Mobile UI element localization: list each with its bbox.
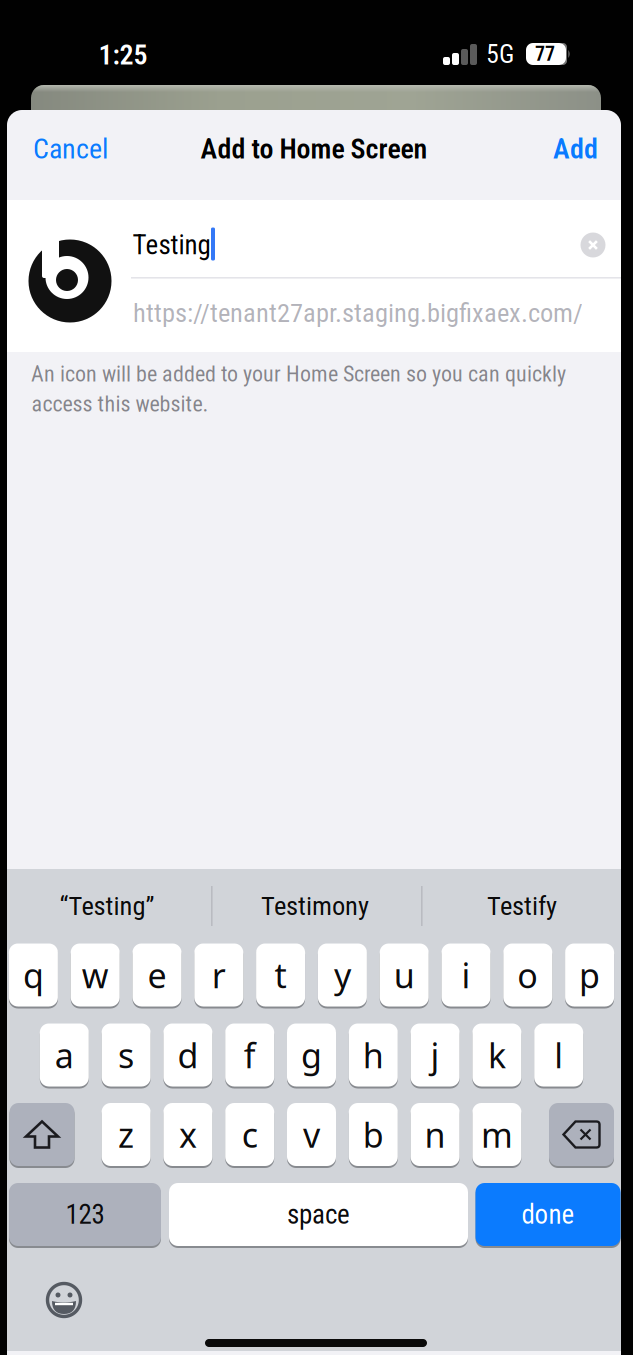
button[interactable]: u <box>380 942 429 1007</box>
button[interactable]: v <box>287 1102 336 1167</box>
staticText: x <box>179 1111 197 1158</box>
button[interactable]: 123 <box>9 1182 161 1247</box>
button[interactable]: b <box>349 1102 398 1167</box>
staticText: y <box>334 952 351 998</box>
button[interactable]: a <box>40 1022 89 1087</box>
staticText: 123 <box>65 1199 104 1230</box>
button[interactable]: s <box>102 1022 151 1087</box>
staticText: Cancel <box>33 133 108 165</box>
button[interactable]: t <box>256 942 305 1007</box>
staticText: n <box>425 1111 446 1158</box>
staticText: 77 <box>535 42 555 66</box>
staticText: i <box>461 952 470 998</box>
button[interactable]: “Testing” <box>12 878 202 934</box>
button[interactable]: r <box>194 942 243 1007</box>
button[interactable]: i <box>441 942 490 1007</box>
staticText: An icon will be added to your Home Scree… <box>31 361 566 387</box>
button[interactable]: d <box>163 1022 212 1087</box>
button[interactable]: j <box>411 1022 460 1087</box>
staticText: o <box>517 952 538 998</box>
staticText: v <box>303 1111 320 1158</box>
button[interactable]: k <box>472 1022 521 1087</box>
staticText: p <box>579 952 600 998</box>
button[interactable]: Add <box>553 133 598 165</box>
button[interactable]: space <box>169 1182 468 1247</box>
button[interactable]: done <box>475 1182 620 1247</box>
staticText: u <box>394 952 415 998</box>
staticText: s <box>118 1032 134 1078</box>
staticText: 1:25 <box>98 39 147 71</box>
staticText: q <box>23 952 44 998</box>
staticText: f <box>244 1032 256 1078</box>
staticText: d <box>177 1032 198 1078</box>
button[interactable]: y <box>318 942 367 1007</box>
staticText: c <box>242 1111 258 1158</box>
button[interactable]: h <box>349 1022 398 1087</box>
staticText: z <box>118 1111 134 1158</box>
staticText: “Testing” <box>59 890 154 922</box>
staticText: k <box>488 1032 506 1078</box>
staticText: e <box>147 952 166 998</box>
button[interactable]: z <box>102 1102 151 1167</box>
staticText: h <box>363 1032 384 1078</box>
staticText: a <box>55 1032 74 1078</box>
button[interactable]: n <box>411 1102 460 1167</box>
staticText: access this website. <box>31 391 208 417</box>
button[interactable]: l <box>534 1022 583 1087</box>
staticText: Testify <box>487 890 557 922</box>
button[interactable]: o <box>503 942 552 1007</box>
button[interactable]: Delete <box>549 1102 614 1167</box>
staticText: g <box>301 1032 322 1078</box>
button[interactable]: p <box>565 942 614 1007</box>
staticText: j <box>431 1032 440 1078</box>
button[interactable]: Emoji <box>46 1282 82 1318</box>
staticText: https://tenant27apr.staging.bigfixaex.co… <box>133 297 583 329</box>
button[interactable]: g <box>287 1022 336 1087</box>
button[interactable]: w <box>71 942 120 1007</box>
staticText: Add <box>553 133 598 165</box>
button[interactable]: c <box>225 1102 274 1167</box>
button[interactable]: q <box>9 942 58 1007</box>
staticText: space <box>287 1199 350 1230</box>
button[interactable]: Clear text <box>580 232 605 257</box>
staticText: w <box>82 952 109 998</box>
staticText: 5G <box>486 39 514 69</box>
staticText: t <box>275 952 287 998</box>
button[interactable]: x <box>163 1102 212 1167</box>
button[interactable]: Testify <box>427 878 617 934</box>
staticText: b <box>363 1111 384 1158</box>
button[interactable]: Shift <box>9 1102 74 1167</box>
button[interactable]: Testimony <box>220 878 410 934</box>
staticText: Testimony <box>261 890 369 922</box>
button[interactable]: Cancel <box>33 133 108 165</box>
staticText: Add to Home Screen <box>200 133 427 165</box>
button[interactable]: m <box>472 1102 521 1167</box>
button[interactable]: f <box>225 1022 274 1087</box>
button[interactable]: e <box>132 942 181 1007</box>
staticText: r <box>212 952 226 998</box>
staticText: Testing <box>132 229 210 261</box>
staticText: done <box>521 1199 574 1230</box>
staticText: l <box>554 1032 563 1078</box>
staticText: m <box>481 1111 513 1158</box>
